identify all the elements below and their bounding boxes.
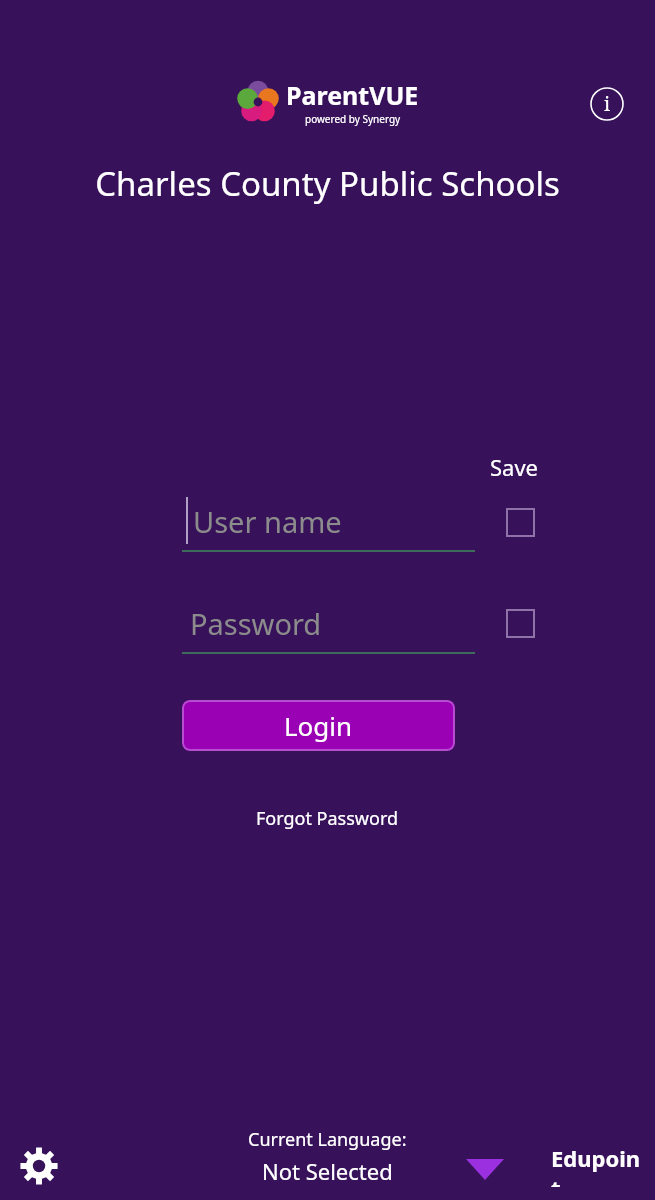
button[interactable]: Save password [498, 601, 542, 645]
staticText: Password [190, 604, 322, 643]
staticText: Save [490, 452, 539, 482]
button[interactable]: Select language [456, 1143, 514, 1195]
button[interactable]: Login [182, 700, 455, 751]
staticText: User name [193, 502, 342, 541]
button[interactable]: Information [588, 85, 626, 123]
staticText: i [604, 91, 611, 117]
staticText: Charles County Public Schools [0, 161, 655, 206]
button[interactable]: Settings [13, 1140, 65, 1192]
staticText: Edupoint [551, 1143, 647, 1187]
button[interactable]: Forgot Password [236, 803, 419, 834]
staticText: Current Language: [248, 1127, 407, 1152]
staticText: Forgot Password [256, 806, 399, 831]
staticText: Login [284, 708, 353, 743]
staticText: Not Selected [262, 1156, 393, 1186]
button[interactable]: Current Language: [227, 1127, 427, 1186]
staticText: ParentVUE [286, 78, 419, 112]
button[interactable]: Save user name [498, 500, 542, 544]
button[interactable]: Password [182, 592, 475, 654]
staticText: powered by Synergy [305, 112, 401, 126]
button[interactable]: User name [182, 490, 475, 552]
